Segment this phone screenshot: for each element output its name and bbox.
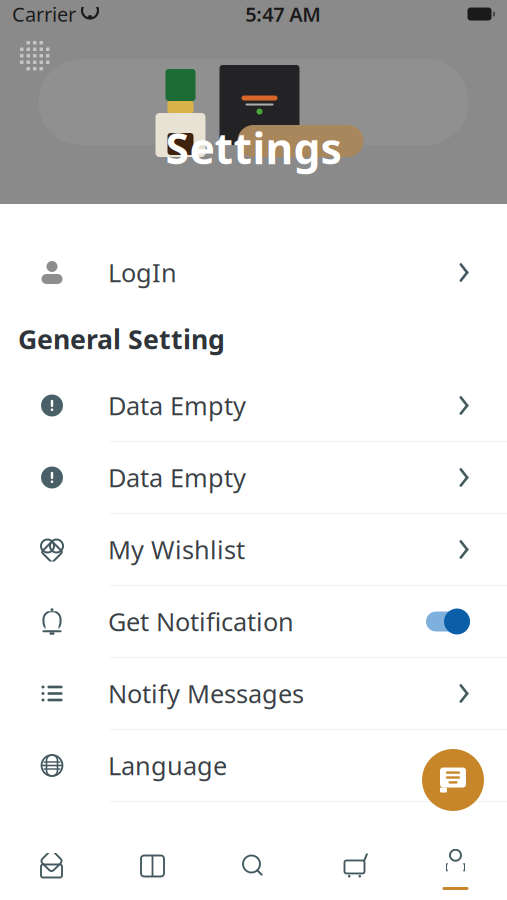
staticText: Carrier (12, 1, 76, 27)
button[interactable]: Get Notification (0, 586, 507, 658)
staticText: Language (108, 749, 227, 782)
button[interactable]: Chat support (422, 749, 484, 811)
staticText: LogIn (108, 256, 177, 289)
staticText: Notify Messages (108, 677, 304, 710)
staticText: Data Empty (108, 389, 246, 422)
staticText: 5:47 AM (245, 1, 321, 27)
button[interactable]: Categories (102, 832, 203, 900)
button[interactable]: Notify Messages (0, 658, 507, 730)
button[interactable]: Account (405, 832, 506, 900)
button[interactable]: Search (203, 832, 304, 900)
button[interactable]: My Wishlist (0, 514, 507, 586)
staticText: Settings (165, 119, 341, 176)
button[interactable]: Data Empty (0, 442, 507, 514)
button[interactable]: Language (0, 730, 507, 802)
staticText: My Wishlist (108, 533, 245, 566)
staticText: Data Empty (108, 461, 246, 494)
button[interactable]: Cart (304, 832, 405, 900)
button[interactable]: Data Empty (0, 370, 507, 442)
staticText: Get Notification (108, 605, 294, 638)
staticText: General Setting (18, 321, 225, 357)
button[interactable]: LogIn (0, 237, 507, 308)
button[interactable]: Home (1, 832, 102, 900)
